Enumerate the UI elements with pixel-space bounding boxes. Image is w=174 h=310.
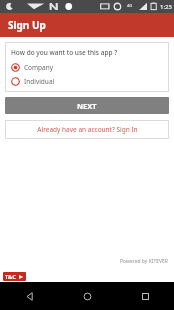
staticText: 1:25: [160, 3, 172, 11]
staticText: NEXT: [77, 101, 97, 111]
button[interactable]: Company: [11, 63, 163, 72]
staticText: Company: [24, 63, 54, 72]
staticText: Individual: [24, 77, 55, 86]
button[interactable]: Home: [58, 282, 116, 310]
staticText: T&C: [5, 273, 16, 280]
staticText: Already have an account? Sign In: [37, 125, 138, 134]
staticText: 4G: [127, 3, 133, 8]
button[interactable]: Already have an account? Sign In: [5, 120, 169, 139]
staticText: How do you want to use this app ?: [11, 48, 118, 57]
button[interactable]: Terms and Conditions: [3, 272, 26, 281]
button[interactable]: Back: [0, 282, 58, 310]
staticText: Powered by KITEVER: [120, 258, 168, 265]
button[interactable]: NEXT: [5, 97, 169, 114]
staticText: Sign Up: [8, 18, 46, 32]
button[interactable]: Recent apps: [116, 282, 174, 310]
button[interactable]: Individual: [11, 77, 163, 86]
